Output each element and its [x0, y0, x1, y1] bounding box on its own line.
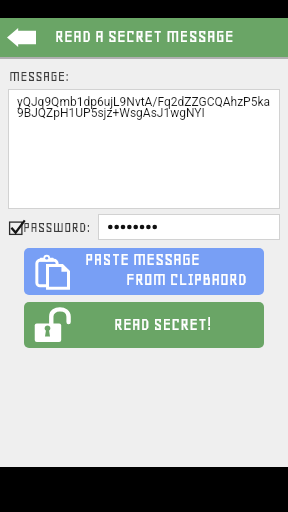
button[interactable]: PASTE MESSAGE — [24, 248, 264, 295]
button[interactable]: READ SECRET! — [24, 302, 264, 348]
staticText: MESSAGE: — [9, 68, 70, 84]
staticText: FROM CLIPBAORD — [126, 270, 247, 289]
staticText: READ A SECRET MESSAGE — [55, 27, 234, 46]
staticText: READ SECRET! — [114, 315, 212, 334]
button[interactable]: Navigate up — [0, 18, 42, 57]
staticText: PASSWORD: — [23, 219, 91, 235]
staticText: PASTE MESSAGE — [85, 250, 200, 269]
staticText: yQJq9Qmb1dp6ujL9NvtA/Fq2dZZGCQAhzP5ka 9B… — [17, 95, 271, 120]
button[interactable]: PASSWORD: — [0, 214, 98, 240]
